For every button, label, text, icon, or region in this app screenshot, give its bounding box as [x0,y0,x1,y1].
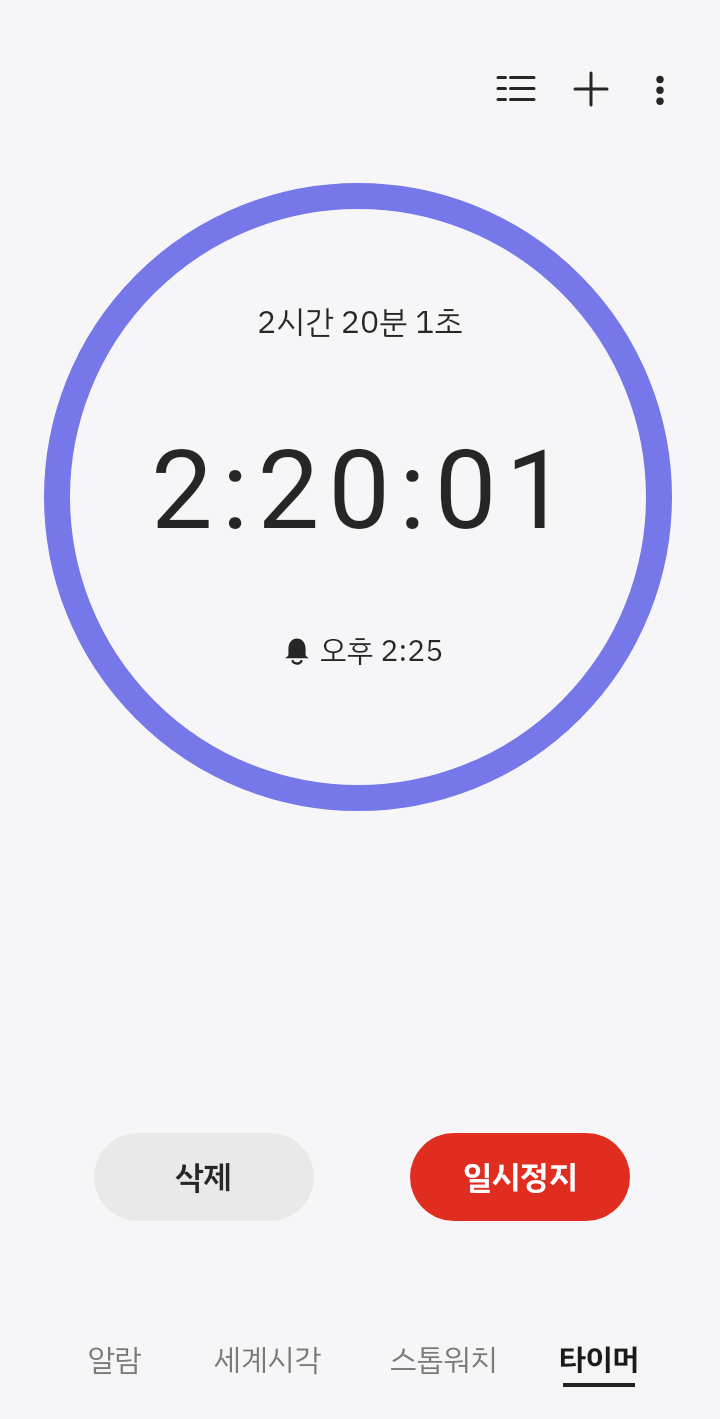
button[interactable]: 알람 [35,1332,195,1386]
staticText: 삭제 [175,1153,233,1201]
staticText: 오후 2:25 [320,628,444,673]
staticText: 일시정지 [463,1153,578,1201]
button[interactable]: 스톱워치 [364,1332,524,1386]
button[interactable]: 일시정지 [410,1133,630,1221]
staticText: 세계시각 [214,1337,322,1382]
staticText: 타이머 [559,1337,640,1382]
button[interactable] [492,64,540,112]
button[interactable] [567,65,615,113]
staticText: 알람 [88,1337,142,1382]
staticText: 2시간 20분 1초 [257,298,464,346]
button[interactable]: 타이머 [519,1332,679,1390]
button[interactable] [636,66,684,114]
button[interactable]: 세계시각 [188,1332,348,1386]
button[interactable]: 삭제 [94,1133,314,1221]
staticText: 2:20:01 [151,426,577,546]
staticText: 스톱워치 [390,1337,498,1382]
